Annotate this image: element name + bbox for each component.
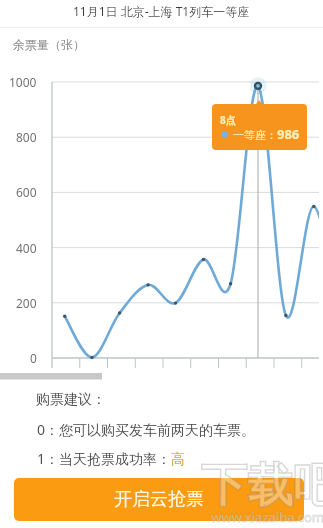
button[interactable]: 开启云抢票 [14,478,304,521]
staticText: 800 [16,129,37,145]
staticText: 200 [16,295,37,311]
staticText: 下载吧 [201,457,323,515]
staticText: www.xiazaiba.com [211,508,323,526]
staticText: 1：当天抢票成功率：高 [37,449,186,468]
staticText: 11月1日 北京-上海 T1列车一等座 [73,3,250,19]
staticText: www.xiazaiba.com [211,508,323,526]
staticText: 8点 [220,113,236,127]
staticText: 开启云抢票 [114,488,204,511]
staticText: 余票量（张） [13,37,85,52]
staticText: 0 [30,350,37,366]
staticText: 购票建议： [36,391,106,409]
staticText: 一等座：986 [233,125,300,143]
staticText: 400 [16,240,37,256]
staticText: 0：您可以购买发车前两天的车票。 [37,420,256,439]
staticText: 600 [16,184,37,200]
staticText: 下载吧 [201,457,323,515]
staticText: 1000 [9,74,37,90]
